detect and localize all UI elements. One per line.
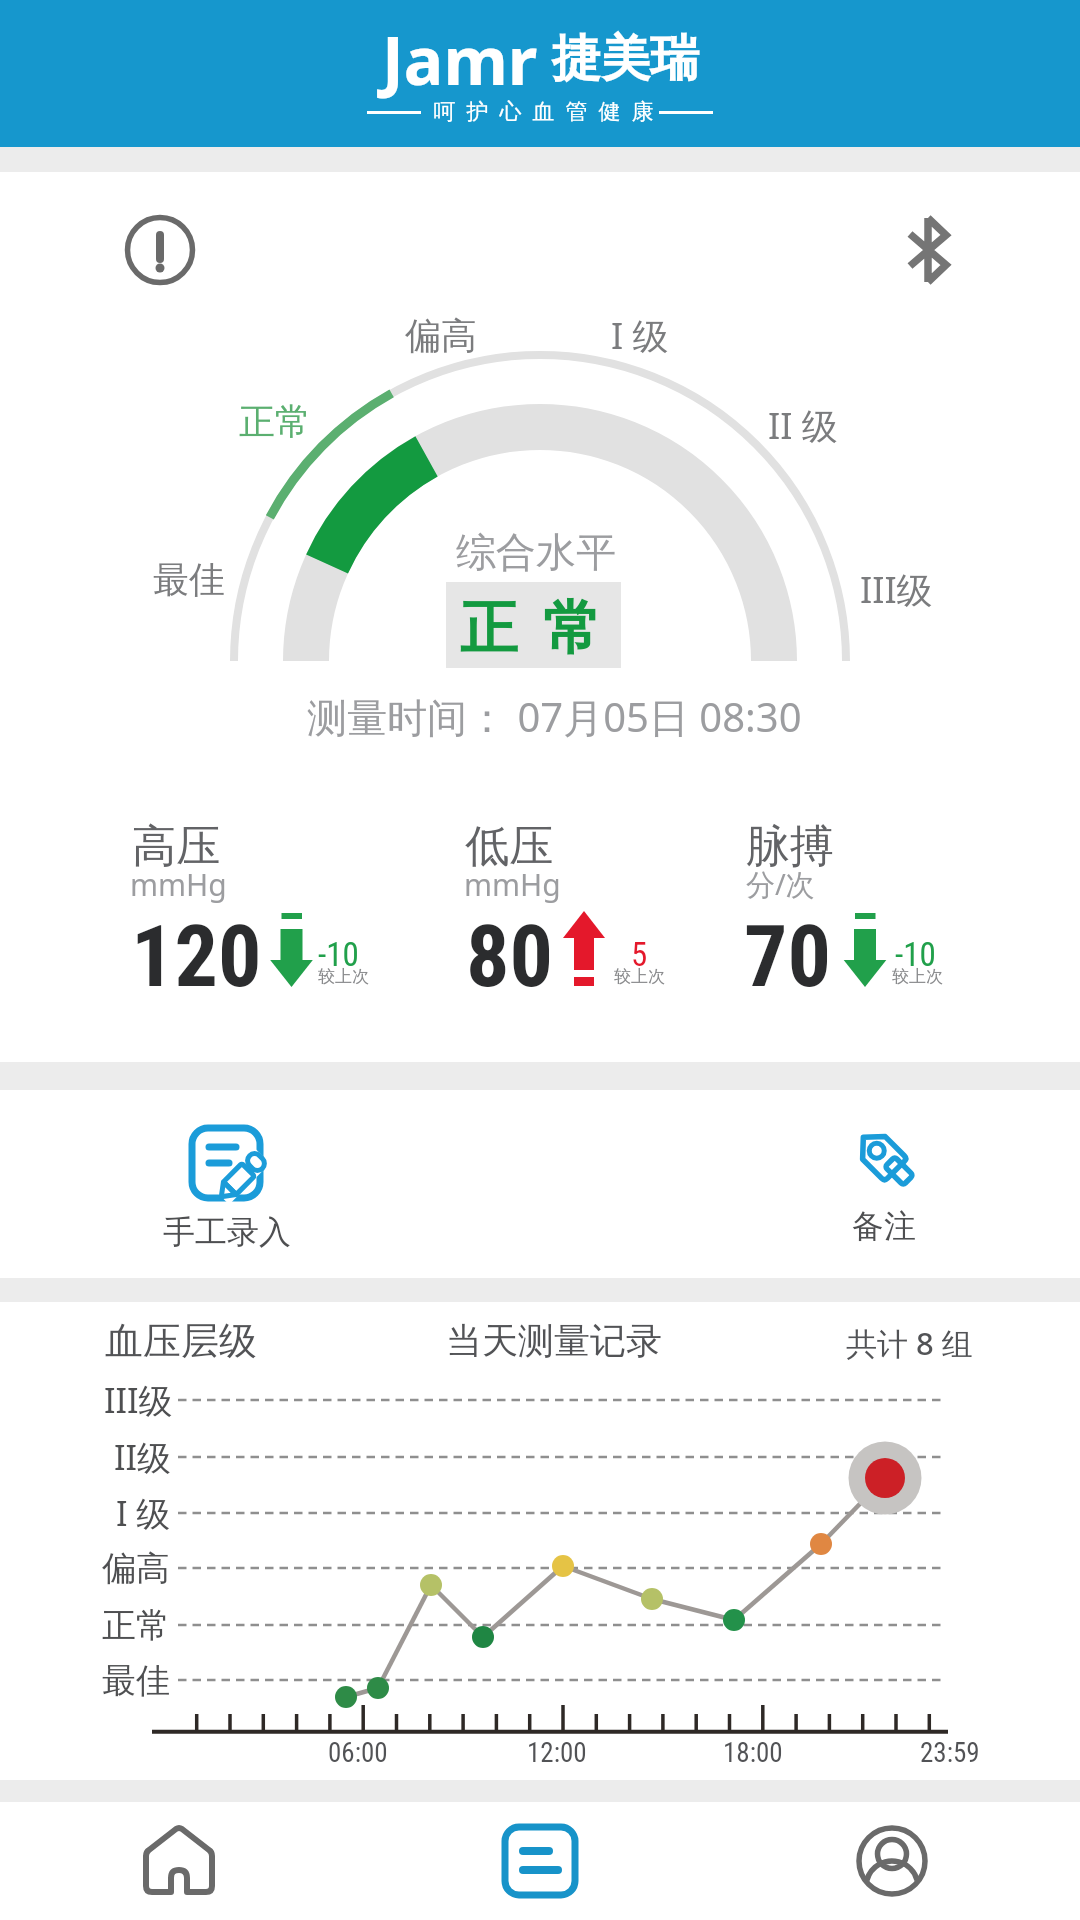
button[interactable]	[120, 210, 200, 290]
staticText: 80	[466, 906, 554, 1007]
staticText: 5	[631, 935, 648, 974]
staticText: 测量时间： 07月05日 08:30	[307, 689, 802, 744]
staticText: 120	[131, 906, 262, 1007]
staticText: II 级	[768, 401, 838, 450]
staticText: 综合水平	[456, 527, 616, 577]
staticText: III级	[104, 1377, 173, 1423]
staticText: II级	[114, 1434, 172, 1480]
staticText: I 级	[116, 1490, 171, 1536]
button[interactable]	[0, 1802, 360, 1920]
staticText: 正 常	[460, 586, 607, 665]
staticText: 12:00	[527, 1737, 587, 1769]
staticText: 23:59	[920, 1737, 980, 1769]
staticText: 较上次	[892, 966, 943, 987]
staticText: 偏高	[102, 1547, 170, 1590]
staticText: 18:00	[723, 1737, 783, 1769]
staticText: 低压	[465, 819, 553, 874]
staticText: 正常	[102, 1604, 170, 1647]
staticText: III级	[860, 565, 933, 614]
staticText: I 级	[611, 311, 669, 360]
staticText: 当天测量记录	[446, 1318, 662, 1363]
staticText: 脉搏	[746, 819, 834, 874]
button[interactable]	[360, 1802, 720, 1920]
staticText: 手工录入	[163, 1212, 291, 1252]
staticText: 血压层级	[105, 1317, 257, 1365]
button[interactable]: 备注	[812, 1110, 956, 1260]
staticText: 捷美瑞	[552, 28, 699, 90]
staticText: 70	[744, 906, 832, 1007]
staticText: -10	[895, 935, 936, 974]
staticText: 较上次	[318, 966, 369, 987]
staticText: mmHg	[464, 864, 561, 905]
staticText: 最佳	[102, 1659, 170, 1702]
staticText: 高压	[132, 819, 220, 874]
staticText: 共计 8 组	[846, 1322, 973, 1364]
staticText: 06:00	[328, 1737, 388, 1769]
staticText: 呵护心血管健康	[428, 98, 659, 126]
staticText: Jamr	[382, 14, 538, 104]
staticText: -10	[318, 935, 359, 974]
staticText: 较上次	[614, 966, 665, 987]
staticText: 最佳	[153, 557, 225, 602]
staticText: 偏高	[405, 313, 477, 358]
staticText: 正常	[239, 399, 311, 444]
staticText: 备注	[852, 1206, 916, 1246]
button[interactable]	[720, 1802, 1080, 1920]
staticText: mmHg	[130, 864, 227, 905]
staticText: 分/次	[746, 864, 815, 904]
button[interactable]: 手工录入	[142, 1110, 312, 1260]
button[interactable]	[898, 212, 958, 288]
